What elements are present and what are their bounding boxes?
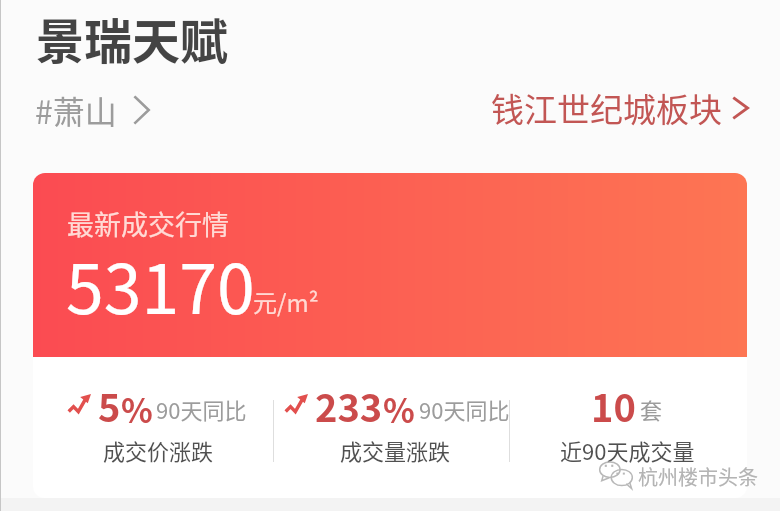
staticText: 景瑞天赋 — [36, 3, 229, 73]
button[interactable] — [274, 357, 509, 498]
staticText: 钱江世纪城板块 — [491, 84, 722, 132]
button[interactable]: 最新成交行情 — [33, 173, 747, 357]
button[interactable]: 钱江世纪城板块 — [491, 84, 749, 132]
staticText: % — [121, 385, 153, 433]
staticText: 成交价涨跌 — [103, 434, 214, 466]
button[interactable] — [33, 357, 273, 498]
staticText: 53170 — [66, 235, 255, 333]
staticText: 233 — [315, 378, 383, 433]
staticText: 5 — [98, 378, 121, 433]
staticText: 90天同比 — [156, 393, 247, 425]
staticText: 90天同比 — [419, 393, 510, 425]
other: WeChat — [599, 461, 633, 491]
staticText: 成交量涨跌 — [340, 434, 451, 466]
staticText: 最新成交行情 — [67, 204, 229, 243]
other: Trend up — [285, 394, 308, 412]
staticText: 元/m² — [253, 284, 319, 319]
button[interactable]: #萧山 — [35, 87, 150, 133]
staticText: 套 — [640, 393, 663, 425]
staticText: #萧山 — [35, 87, 117, 133]
staticText: 近90天成交量 — [560, 434, 695, 466]
staticText: 10 — [591, 378, 636, 433]
other: Trend up — [68, 394, 91, 412]
staticText: % — [383, 385, 415, 433]
staticText: 杭州楼市头条 — [638, 462, 758, 491]
button[interactable] — [510, 357, 747, 498]
